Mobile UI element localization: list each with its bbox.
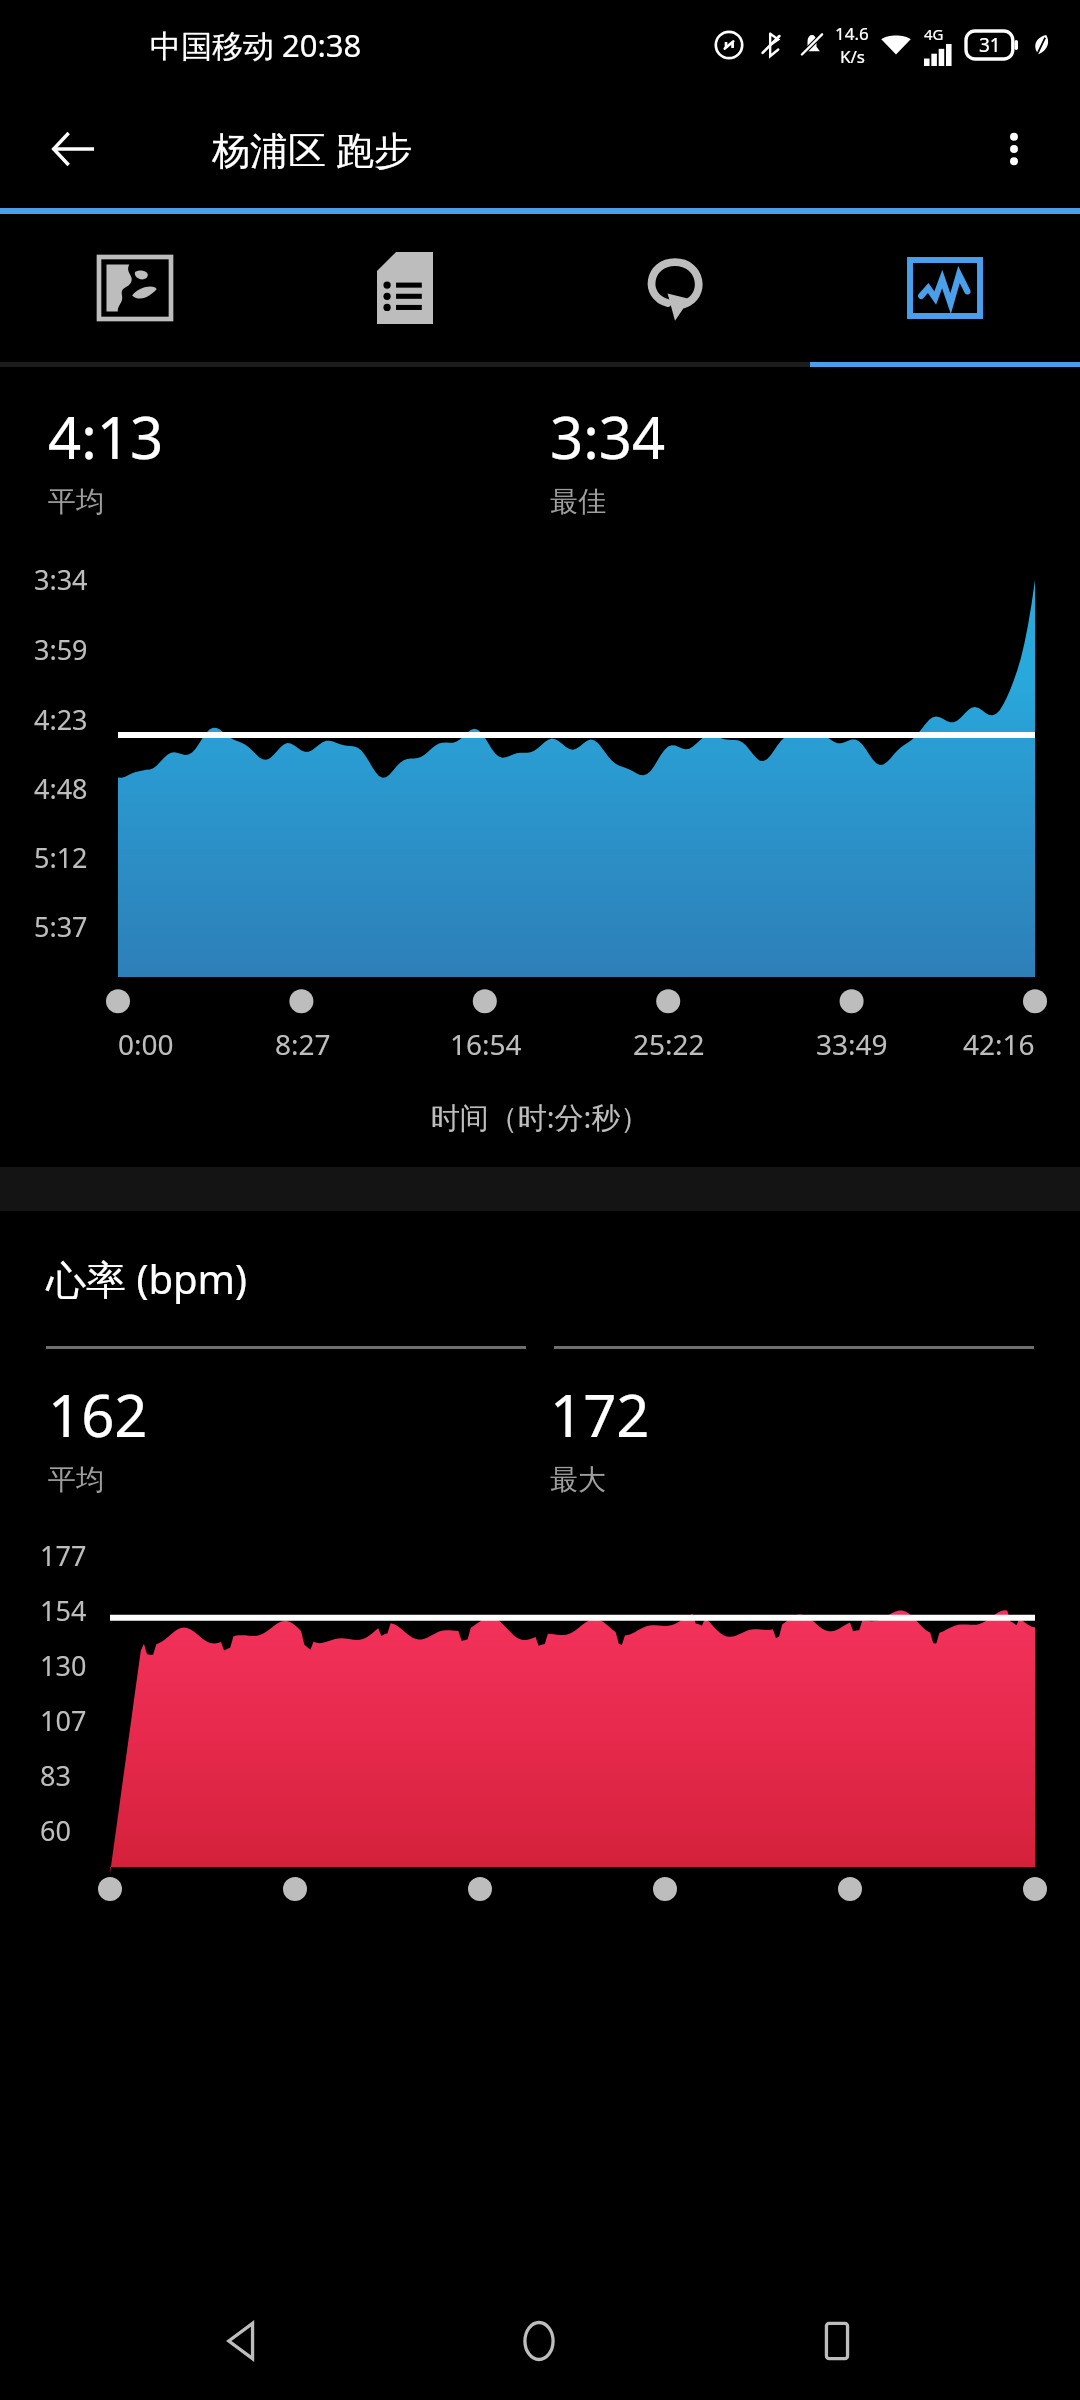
button[interactable]: 返回: [36, 112, 110, 186]
staticText: 5:37: [34, 908, 88, 945]
staticText: 平均: [48, 1462, 104, 1497]
staticText: 最佳: [550, 484, 606, 519]
staticText: 42:16: [963, 1025, 1035, 1063]
staticText: 中国移动 20:38: [150, 24, 362, 66]
staticText: 33:49: [816, 1025, 888, 1063]
staticText: K/s: [840, 45, 865, 68]
staticText: 60: [40, 1812, 71, 1849]
staticText: 154: [40, 1592, 87, 1629]
button[interactable]: 图表: [810, 214, 1080, 362]
button[interactable]: 地图: [0, 214, 270, 362]
staticText: 177: [40, 1537, 87, 1574]
button[interactable]: 详情: [270, 214, 540, 362]
staticText: 16:54: [450, 1025, 522, 1063]
staticText: 172: [550, 1375, 650, 1454]
staticText: 83: [40, 1757, 71, 1794]
staticText: 平均: [48, 484, 104, 519]
staticText: 130: [40, 1647, 87, 1684]
staticText: 最大: [550, 1462, 606, 1497]
staticText: 心率 (bpm): [46, 1251, 247, 1306]
staticText: 4G: [924, 24, 944, 44]
button[interactable]: 分段: [540, 214, 810, 362]
staticText: 0:00: [118, 1025, 174, 1063]
staticText: 杨浦区 跑步: [212, 123, 412, 175]
staticText: 3:34: [550, 397, 666, 476]
staticText: 25:22: [633, 1025, 705, 1063]
button[interactable]: 返回: [187, 2286, 297, 2396]
staticText: 14.6: [835, 22, 869, 45]
staticText: 162: [48, 1375, 148, 1454]
staticText: 时间（时:分:秒）: [0, 1097, 1080, 1137]
staticText: 107: [40, 1702, 87, 1739]
button[interactable]: 主屏幕: [484, 2286, 594, 2396]
staticText: 4:23: [34, 701, 88, 738]
button[interactable]: 更多选项: [976, 111, 1052, 187]
staticText: 8:27: [275, 1025, 331, 1063]
staticText: 31: [979, 32, 1001, 58]
staticText: 4:48: [34, 770, 88, 807]
button[interactable]: 最近任务: [782, 2286, 892, 2396]
staticText: 3:34: [34, 561, 88, 598]
staticText: 3:59: [34, 631, 88, 668]
staticText: 5:12: [34, 839, 88, 876]
staticText: 4:13: [48, 397, 164, 476]
